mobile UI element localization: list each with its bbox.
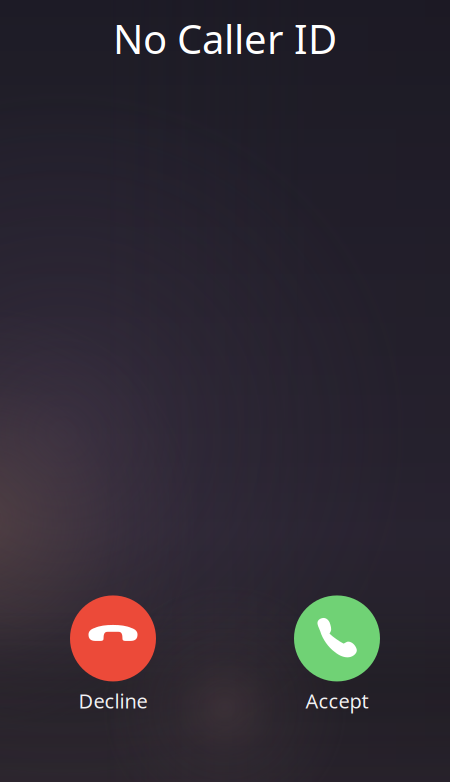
staticText: No Caller ID: [113, 12, 337, 65]
staticText: Accept: [305, 687, 368, 714]
button[interactable]: Decline: [38, 595, 188, 714]
staticText: Decline: [78, 687, 147, 714]
button[interactable]: Accept: [262, 595, 412, 714]
